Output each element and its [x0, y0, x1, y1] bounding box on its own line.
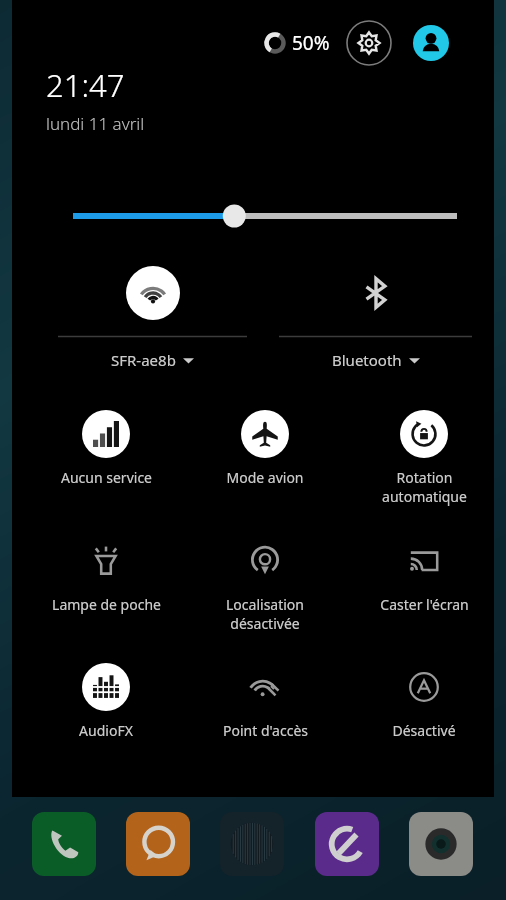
staticText: Lampe de poche — [52, 595, 161, 614]
staticText: Mode avion — [226, 468, 304, 487]
staticText: AudioFX — [79, 721, 133, 740]
staticText: 50% — [292, 30, 330, 56]
button[interactable]: Camera — [409, 812, 473, 876]
button[interactable]: AudioFX — [31, 662, 181, 740]
staticText: 21:47 — [46, 64, 125, 106]
staticText: SFR-ae8b — [111, 350, 176, 370]
button[interactable]: Brightness — [52, 192, 478, 240]
button[interactable]: Settings — [346, 20, 392, 66]
button[interactable]: Bluetooth — [279, 258, 472, 383]
button[interactable]: Messages — [126, 812, 190, 876]
button[interactable]: Music — [315, 812, 379, 876]
staticText: Aucun service — [61, 468, 152, 487]
staticText: Caster l'écran — [380, 595, 469, 614]
staticText: Localisation désactivée — [226, 595, 304, 633]
button[interactable]: Caster l'écran — [349, 536, 499, 614]
button[interactable]: Mode avion — [190, 409, 340, 487]
staticText: lundi 11 avril — [46, 112, 145, 135]
button[interactable]: User profile — [413, 25, 449, 61]
staticText: Point d'accès — [223, 721, 308, 740]
button[interactable]: Browser — [220, 812, 284, 876]
button[interactable]: Aucun service — [31, 409, 181, 487]
button[interactable]: Lampe de poche — [31, 536, 181, 614]
button[interactable]: Point d'accès — [190, 662, 340, 740]
button[interactable]: Localisation désactivée — [190, 536, 340, 633]
staticText: Désactivé — [392, 721, 456, 740]
staticText: Bluetooth — [332, 350, 402, 370]
button[interactable]: Rotation automatique — [349, 409, 499, 506]
button[interactable]: Désactivé — [349, 662, 499, 740]
button[interactable]: SFR-ae8b — [58, 258, 247, 383]
staticText: Rotation automatique — [382, 468, 467, 506]
button[interactable]: Phone — [32, 812, 96, 876]
